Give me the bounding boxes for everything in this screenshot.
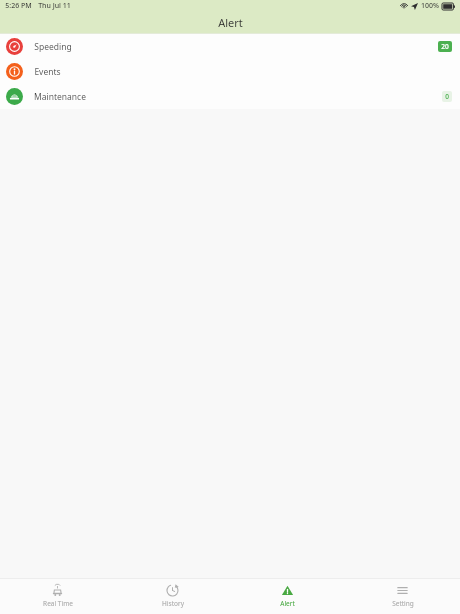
- button[interactable]: Setting: [345, 578, 460, 614]
- button[interactable]: Alert: [230, 578, 345, 614]
- staticText: Real Time: [43, 599, 73, 608]
- staticText: Thu Jul 11: [38, 1, 71, 11]
- staticText: Setting: [392, 599, 414, 608]
- button[interactable]: Real Time: [0, 578, 115, 614]
- staticText: History: [162, 599, 184, 608]
- staticText: 100%: [421, 1, 439, 11]
- button[interactable]: Events: [0, 59, 460, 84]
- staticText: Speeding: [34, 41, 72, 53]
- staticText: 0: [445, 92, 449, 101]
- staticText: 5:26 PM: [5, 1, 32, 11]
- staticText: Events: [34, 66, 61, 78]
- button[interactable]: History: [115, 578, 230, 614]
- staticText: Alert: [218, 15, 243, 30]
- staticText: Maintenance: [34, 91, 86, 103]
- staticText: 20: [441, 42, 449, 51]
- staticText: Alert: [280, 599, 295, 608]
- button[interactable]: Maintenance: [0, 84, 460, 109]
- button[interactable]: Speeding: [0, 34, 460, 59]
